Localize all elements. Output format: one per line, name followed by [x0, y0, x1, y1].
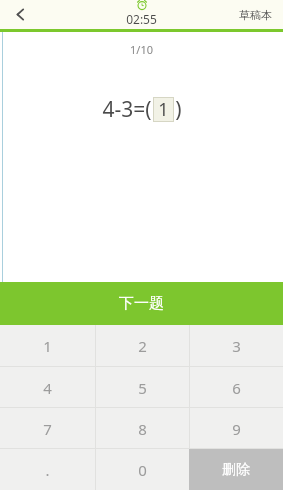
button[interactable]: Back: [0, 0, 40, 29]
staticText: 2: [138, 336, 147, 356]
staticText: 0: [138, 460, 147, 480]
button[interactable]: 删除: [189, 449, 283, 490]
staticText: .: [45, 460, 50, 480]
staticText: ): [175, 95, 182, 124]
staticText: 1: [158, 97, 169, 122]
button[interactable]: 4: [0, 367, 95, 408]
button[interactable]: 1: [0, 325, 95, 367]
button[interactable]: 8: [95, 408, 189, 449]
staticText: 删除: [222, 461, 250, 479]
staticText: 1: [43, 336, 52, 356]
staticText: 3: [232, 336, 241, 356]
staticText: 8: [138, 419, 147, 439]
staticText: 草稿本: [239, 8, 272, 22]
staticText: 下一题: [119, 294, 164, 313]
staticText: 6: [232, 378, 241, 398]
button[interactable]: 9: [189, 408, 283, 449]
staticText: 02:55: [126, 11, 157, 27]
staticText: 7: [43, 419, 52, 439]
staticText: 5: [138, 378, 147, 398]
button[interactable]: 7: [0, 408, 95, 449]
staticText: 4-3=(: [102, 95, 152, 124]
button[interactable]: 6: [189, 367, 283, 408]
button[interactable]: 0: [95, 449, 189, 490]
button[interactable]: 2: [95, 325, 189, 367]
staticText: 9: [232, 419, 241, 439]
button[interactable]: 1: [153, 97, 174, 122]
button[interactable]: 3: [189, 325, 283, 367]
staticText: 1/10: [130, 42, 153, 57]
button[interactable]: 草稿本: [228, 0, 283, 29]
staticText: 4: [43, 378, 52, 398]
button[interactable]: 5: [95, 367, 189, 408]
button[interactable]: 下一题: [0, 282, 283, 325]
